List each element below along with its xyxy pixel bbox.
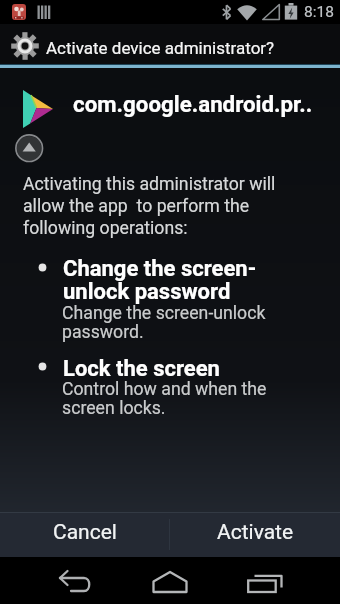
staticText: Activating this administrator will (23, 174, 276, 195)
staticText: Control how and when the (62, 379, 267, 400)
staticText: following operations: (23, 218, 188, 239)
staticText: Cancel (53, 520, 117, 545)
staticText: allow the app to perform the (23, 196, 250, 217)
staticText: password. (62, 322, 144, 343)
staticText: Activate device administrator? (46, 38, 275, 58)
staticText: unlock password (63, 279, 231, 305)
staticText: com.google.android.pr.. (73, 91, 313, 117)
staticText: Lock the screen (63, 356, 220, 382)
staticText: 8:18 (304, 3, 334, 21)
staticText: Change the screen-unlock (62, 303, 266, 324)
staticText: Activate (217, 520, 294, 545)
staticText: Change the screen- (63, 256, 257, 282)
staticText: screen locks. (62, 398, 166, 419)
